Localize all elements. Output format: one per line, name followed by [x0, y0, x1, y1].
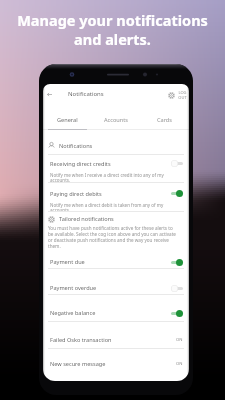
button[interactable]: Notifications [43, 137, 189, 153]
button[interactable]: Settings [165, 89, 177, 101]
staticText: Receiving direct credits [50, 160, 111, 168]
staticText: Manage your notifications and alerts. [17, 10, 208, 49]
staticText: Accounts [104, 116, 128, 124]
button[interactable]: Payment overdue [43, 277, 189, 299]
staticText: Negative balance [50, 309, 96, 317]
button[interactable]: Failed Osko transaction [43, 329, 189, 351]
staticText: You must have push notifications active … [48, 225, 179, 249]
button[interactable]: Payment due [43, 251, 189, 273]
staticText: ON [176, 361, 183, 367]
staticText: ON [176, 337, 183, 343]
staticText: Paying direct debits [50, 190, 102, 198]
button[interactable]: Back [44, 89, 55, 100]
staticText: Cards [157, 116, 172, 124]
staticText: Notify me when I receive a direct credit… [50, 172, 175, 184]
button[interactable]: Accounts [91, 114, 140, 130]
staticText: Failed Osko transaction [50, 336, 112, 344]
staticText: Payment due [50, 258, 85, 266]
staticText: Payment overdue [50, 284, 97, 292]
staticText: Notifications [68, 90, 104, 98]
button[interactable]: Tailored notifications [43, 211, 189, 249]
button[interactable]: Negative balance [43, 302, 189, 324]
button[interactable]: General [43, 114, 91, 130]
staticText: General [57, 116, 78, 124]
button[interactable]: Paying direct debits [43, 184, 189, 211]
button[interactable]: Cards [140, 114, 189, 130]
staticText: New secure message [50, 360, 106, 368]
button[interactable]: New secure message [43, 353, 189, 375]
button[interactable]: Receiving direct credits [43, 154, 189, 182]
staticText: Notifications [59, 142, 93, 150]
staticText: Notify me when a direct debit is taken f… [50, 202, 175, 214]
staticText: LOG OUT [178, 90, 187, 100]
staticText: Tailored notifications [59, 215, 114, 223]
button[interactable]: LOG OUT [176, 89, 188, 101]
